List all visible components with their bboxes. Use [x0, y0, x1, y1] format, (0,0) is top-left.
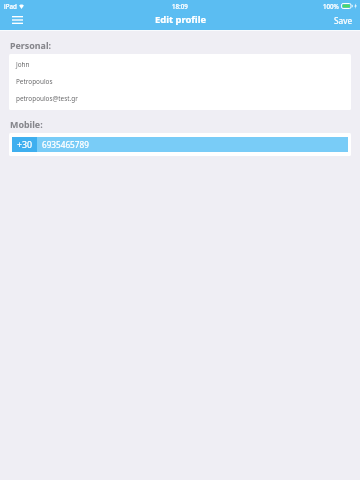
- staticText: iPad: [4, 2, 17, 10]
- staticText: 18:09: [172, 2, 188, 10]
- button[interactable]: petropoulos@test.gr: [9, 90, 351, 107]
- staticText: Edit profile: [155, 13, 207, 26]
- button[interactable]: John: [9, 56, 351, 73]
- staticText: Personal:: [10, 39, 52, 51]
- button[interactable]: Save: [329, 12, 360, 28]
- staticText: John: [16, 60, 30, 69]
- staticText: 100%: [323, 2, 339, 10]
- staticText: Save: [334, 15, 353, 25]
- staticText: Mobile:: [10, 118, 43, 130]
- button[interactable]: Petropoulos: [9, 73, 351, 90]
- staticText: 6935465789: [42, 139, 89, 150]
- staticText: petropoulos@test.gr: [16, 94, 78, 103]
- button[interactable]: +30: [12, 137, 37, 152]
- staticText: +30: [17, 139, 33, 151]
- staticText: Petropoulos: [16, 77, 53, 86]
- button[interactable]: Open navigation menu: [5, 12, 29, 28]
- button[interactable]: 6935465789: [37, 137, 348, 152]
